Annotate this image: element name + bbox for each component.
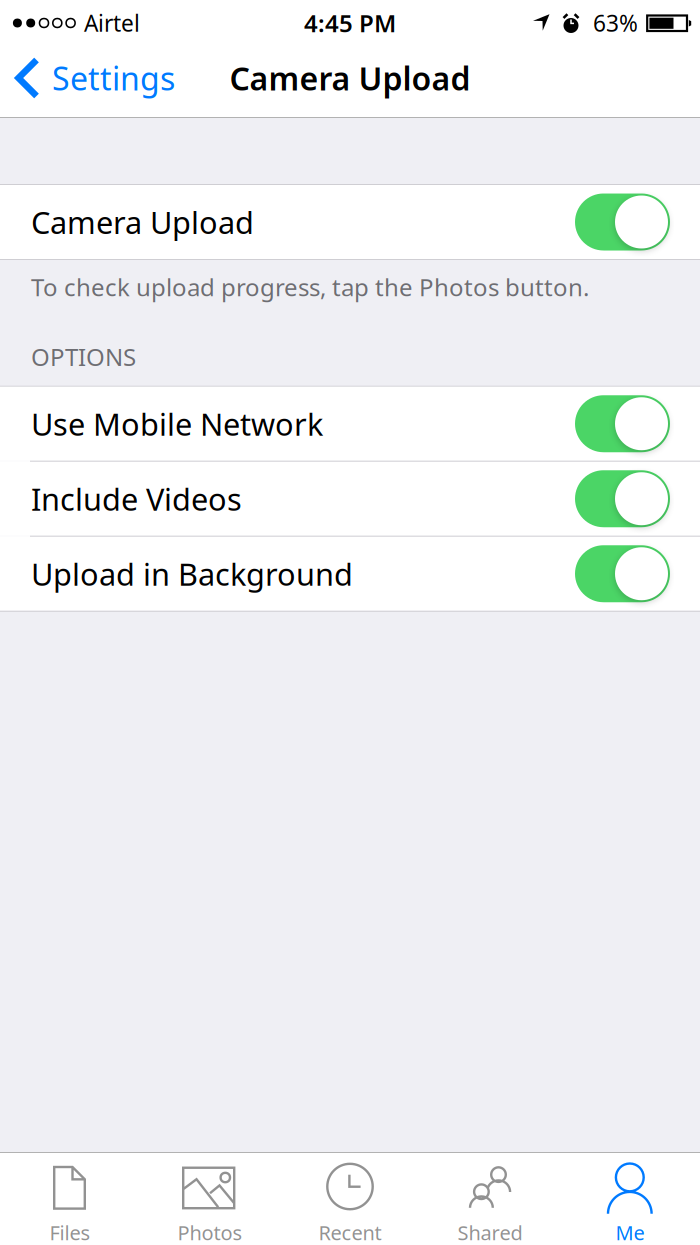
- staticText: Airtel: [84, 8, 140, 38]
- staticText: Upload in Background: [31, 553, 353, 594]
- staticText: OPTIONS: [31, 341, 136, 373]
- button[interactable]: Shared: [420, 1152, 560, 1245]
- staticText: 63%: [593, 8, 638, 38]
- button[interactable]: Camera Upload: [0, 185, 700, 259]
- button[interactable]: Me: [560, 1152, 700, 1245]
- staticText: To check upload progress, tap the Photos…: [31, 271, 589, 303]
- staticText: Me: [615, 1219, 644, 1245]
- staticText: Include Videos: [31, 478, 242, 519]
- button[interactable]: Recent: [280, 1152, 420, 1245]
- button[interactable]: Photos: [140, 1152, 280, 1245]
- staticText: Camera Upload: [229, 57, 470, 99]
- staticText: Camera Upload: [31, 202, 254, 242]
- staticText: Photos: [177, 1219, 242, 1245]
- staticText: Shared: [457, 1219, 522, 1245]
- staticText: Recent: [318, 1219, 381, 1245]
- button[interactable]: Include Videos: [0, 462, 700, 536]
- staticText: 4:45 PM: [304, 7, 396, 39]
- button[interactable]: Files: [0, 1152, 140, 1245]
- button[interactable]: Use Mobile Network: [0, 387, 700, 461]
- staticText: Files: [49, 1219, 90, 1245]
- button[interactable]: Upload in Background: [0, 537, 700, 611]
- staticText: Settings: [52, 57, 175, 99]
- staticText: Use Mobile Network: [31, 403, 323, 444]
- button[interactable]: Settings: [0, 46, 187, 118]
